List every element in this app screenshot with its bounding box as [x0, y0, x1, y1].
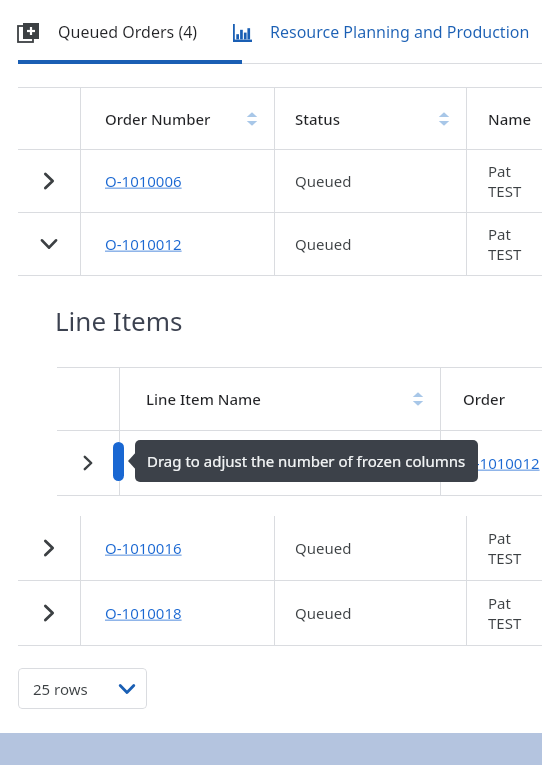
button[interactable]: Resource Planning and Production: [233, 3, 530, 61]
staticText: 25 rows: [33, 679, 88, 699]
staticText: Line Item Name: [146, 389, 261, 409]
button[interactable]: Collapse row: [18, 213, 80, 275]
button[interactable]: O-1010012: [105, 213, 274, 275]
button[interactable]: Expand row: [18, 150, 80, 212]
staticText: Resource Planning and Production: [270, 21, 530, 43]
staticText: Queued: [295, 171, 352, 191]
staticText: Queued: [295, 603, 352, 623]
button[interactable]: Queued Orders (4): [18, 3, 198, 61]
staticText: TEST ACCOUNT: [488, 181, 542, 201]
staticText: O-1010012: [105, 234, 182, 254]
staticText: Order: [463, 389, 506, 409]
staticText: O-1010006: [105, 171, 182, 191]
staticText: Pat Vaccine Chain: [488, 224, 542, 244]
button[interactable]: O-1010006: [105, 150, 274, 212]
staticText: L-1012333: [146, 453, 219, 473]
staticText: Name: [488, 109, 532, 129]
staticText: O-1010016: [105, 538, 182, 558]
staticText: TEST ACCOUNT: [488, 613, 542, 633]
staticText: Queued Orders (4): [58, 21, 198, 43]
staticText: Order Number: [105, 109, 211, 129]
button[interactable]: Order Number: [105, 88, 261, 149]
staticText: Pat Vaccine Chain: [488, 528, 542, 548]
staticText: O-1010012: [463, 453, 540, 473]
staticText: Pat Vaccine Chain: [488, 593, 542, 613]
button[interactable]: L-1012333: [146, 431, 440, 495]
staticText: Line Items: [55, 303, 183, 338]
button[interactable]: O-1010018: [105, 581, 274, 645]
button[interactable]: Line Item Name: [146, 368, 427, 430]
staticText: TEST ACCOUNT: [488, 548, 542, 568]
button[interactable]: 25 rows: [18, 668, 147, 709]
button[interactable]: Expand row: [18, 581, 80, 645]
button[interactable]: Expand line item: [57, 431, 119, 495]
button[interactable]: Drag to adjust frozen columns: [113, 442, 124, 481]
staticText: Queued: [295, 538, 352, 558]
staticText: Queued: [295, 234, 352, 254]
button[interactable]: O-1010016: [105, 516, 274, 580]
staticText: Pat Vaccine Chain: [488, 161, 542, 181]
staticText: Drag to adjust the number of frozen colu…: [147, 451, 466, 471]
staticText: Status: [295, 109, 341, 129]
staticText: O-1010018: [105, 603, 182, 623]
button[interactable]: Expand row: [18, 516, 80, 580]
button[interactable]: O-1010012: [463, 431, 542, 495]
staticText: TEST ACCOUNT: [488, 244, 542, 264]
button[interactable]: Status: [295, 88, 453, 149]
